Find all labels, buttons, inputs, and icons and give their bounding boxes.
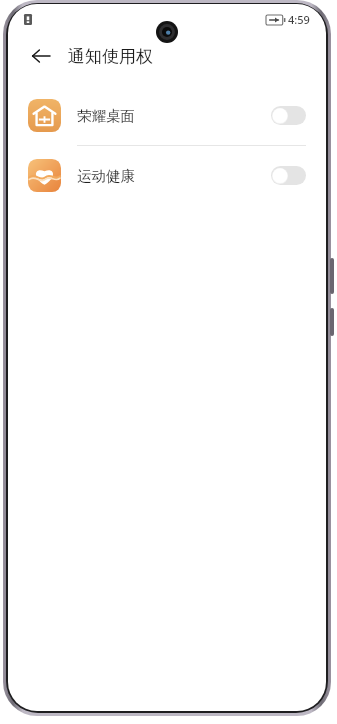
staticText: 4:59	[288, 12, 310, 27]
button[interactable]: Toggle	[271, 166, 306, 185]
other: Power	[330, 308, 334, 336]
button[interactable]: Toggle	[271, 106, 306, 125]
button[interactable]: Back	[26, 41, 56, 71]
staticText: 荣耀桌面	[77, 107, 271, 125]
staticText: 通知使用权	[68, 46, 153, 67]
button[interactable]: 荣耀桌面	[8, 86, 326, 145]
staticText: 运动健康	[77, 167, 271, 185]
button[interactable]: 运动健康	[8, 146, 326, 205]
other: Volume	[330, 258, 334, 294]
